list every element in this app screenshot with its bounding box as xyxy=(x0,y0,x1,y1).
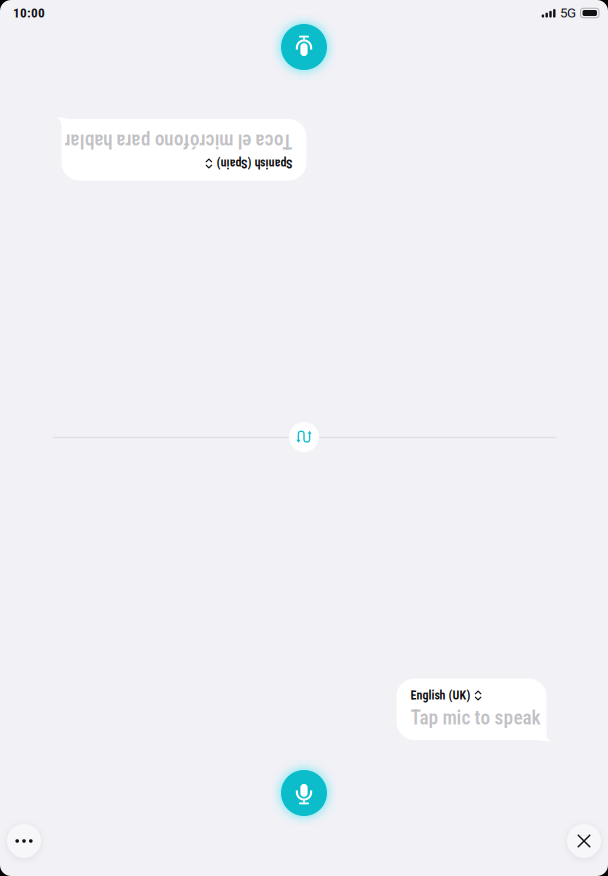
button[interactable]: Spanish (Spain) xyxy=(67,127,155,141)
button[interactable]: Swap languages xyxy=(287,420,321,454)
button[interactable]: Microphone, Spanish xyxy=(276,19,332,75)
staticText: Tap mic to speak xyxy=(410,706,540,729)
button[interactable]: Microphone, English xyxy=(276,765,332,821)
staticText: 10:00 xyxy=(13,5,45,21)
staticText: Spanish (Spain) xyxy=(67,127,143,142)
staticText: Toca el micrófono para hablar xyxy=(67,145,295,168)
button[interactable]: More options xyxy=(4,821,44,861)
staticText: English (UK) xyxy=(410,688,470,703)
button[interactable]: Close xyxy=(564,821,604,861)
staticText: 5G xyxy=(560,5,576,21)
button[interactable]: English (UK) xyxy=(410,688,482,702)
